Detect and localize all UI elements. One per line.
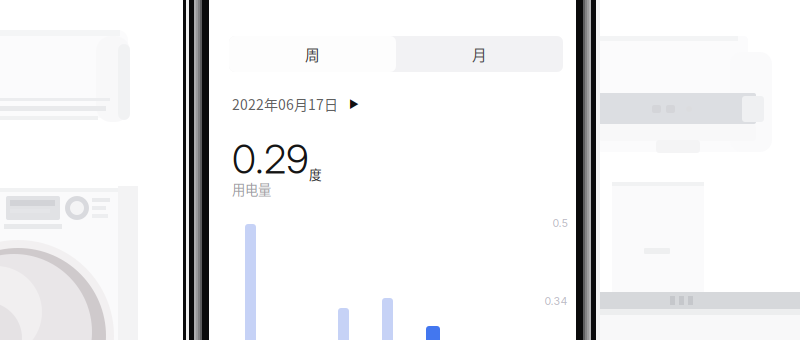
- staticText: 0.34: [544, 294, 567, 307]
- staticText: 用电量: [232, 179, 271, 199]
- staticText: 0.29: [232, 135, 309, 183]
- staticText: 度: [309, 165, 322, 183]
- staticText: ▶: [349, 97, 359, 110]
- button[interactable]: 月: [0, 0, 800, 340]
- button[interactable]: Change date: [0, 0, 800, 340]
- staticText: 月: [472, 43, 487, 65]
- staticText: 0.5: [552, 216, 567, 229]
- staticText: 2022年06月17日: [232, 94, 338, 114]
- staticText: 周: [305, 43, 320, 65]
- button[interactable]: 周: [0, 0, 800, 340]
